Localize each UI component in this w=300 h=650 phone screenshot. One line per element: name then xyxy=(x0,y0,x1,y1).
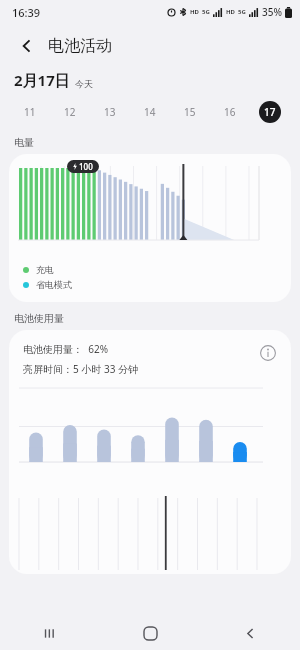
staticText: 2月17日 xyxy=(14,70,70,90)
staticText: 省电模式 xyxy=(36,279,72,290)
button[interactable]: 15 xyxy=(170,96,210,128)
button[interactable]: 14 xyxy=(130,96,170,128)
button[interactable]: 13 xyxy=(90,96,130,128)
staticText: 电池使用量： 62% xyxy=(23,342,108,356)
button[interactable]: Information xyxy=(257,342,279,364)
staticText: 电量 xyxy=(14,136,34,149)
staticText: 13 xyxy=(104,105,116,119)
staticText: 充电 xyxy=(36,264,54,275)
button[interactable]: 16 xyxy=(210,96,250,128)
staticText: 16 xyxy=(224,105,236,119)
staticText: 100 xyxy=(79,161,93,172)
staticText: 电池活动 xyxy=(48,36,112,56)
staticText: 11 xyxy=(24,105,36,119)
staticText: 17 xyxy=(264,105,276,119)
button[interactable]: Home xyxy=(100,616,200,650)
button[interactable]: Back xyxy=(12,31,42,61)
staticText: 16:39 xyxy=(12,5,41,20)
staticText: 15 xyxy=(184,105,196,119)
staticText: 5G xyxy=(238,8,246,16)
button[interactable]: 12 xyxy=(50,96,90,128)
staticText: HD xyxy=(190,8,199,16)
staticText: HD xyxy=(226,8,235,16)
button[interactable]: 17 xyxy=(250,96,290,128)
staticText: 亮屏时间：5 小时 33 分钟 xyxy=(23,362,138,376)
button[interactable]: 电池使用量： 62% xyxy=(9,330,291,574)
button[interactable]: Recents xyxy=(0,616,100,650)
staticText: 电池使用量 xyxy=(14,312,64,325)
button[interactable]: 100 xyxy=(9,154,291,302)
staticText: 12 xyxy=(64,105,76,119)
staticText: 14 xyxy=(144,105,156,119)
staticText: 35% xyxy=(262,5,282,19)
staticText: 今天 xyxy=(75,78,93,89)
staticText: 5G xyxy=(202,8,210,16)
button[interactable]: Back xyxy=(200,616,300,650)
button[interactable]: 11 xyxy=(10,96,50,128)
